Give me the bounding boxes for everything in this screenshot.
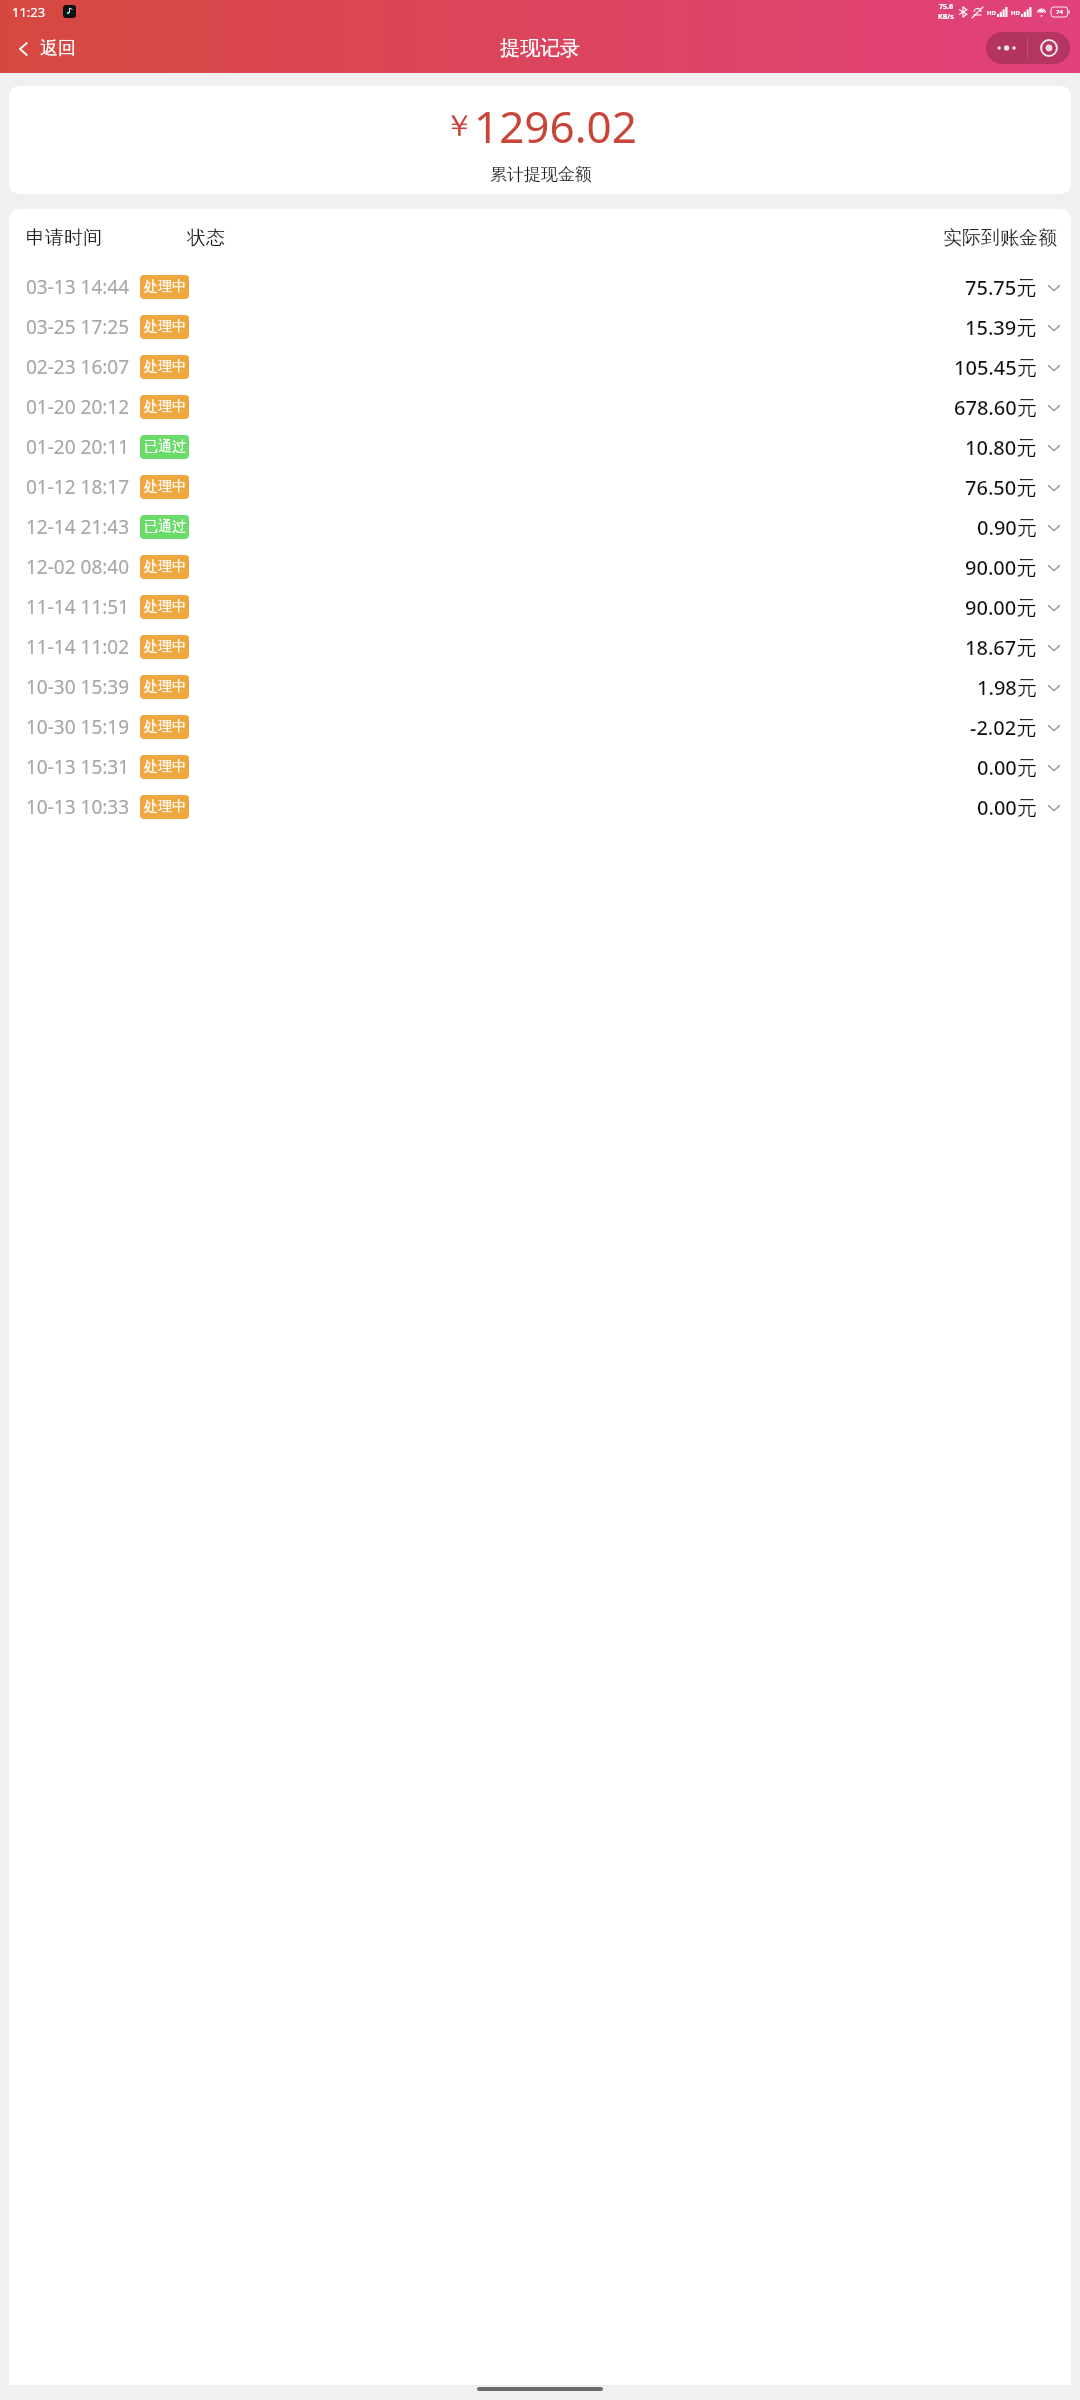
button[interactable]: 10-30 15:39: [9, 667, 1071, 707]
button[interactable]: 03-25 17:25: [9, 307, 1071, 347]
button[interactable]: 02-23 16:07: [9, 347, 1071, 387]
staticText: 15.39元: [965, 314, 1037, 341]
staticText: 处理中: [144, 478, 186, 496]
staticText: 18.67元: [965, 634, 1037, 661]
staticText: 75.6: [939, 2, 953, 12]
staticText: 累计提现金额: [490, 164, 592, 185]
staticText: 11-14 11:02: [26, 634, 130, 660]
staticText: 74: [1056, 8, 1063, 16]
button[interactable]: 01-20 20:11: [9, 427, 1071, 467]
button[interactable]: Close: [1028, 32, 1070, 64]
staticText: 76.50元: [965, 474, 1037, 501]
button[interactable]: 11-14 11:51: [9, 587, 1071, 627]
staticText: 01-20 20:12: [26, 394, 130, 420]
button[interactable]: 03-13 14:44: [9, 267, 1071, 307]
staticText: 75.75元: [965, 274, 1037, 301]
staticText: 12-14 21:43: [26, 514, 130, 540]
staticText: 10-30 15:39: [26, 674, 130, 700]
button[interactable]: 10-30 15:19: [9, 707, 1071, 747]
staticText: 1.98元: [977, 674, 1037, 701]
staticText: 处理中: [144, 318, 186, 336]
staticText: 678.60元: [954, 394, 1037, 421]
staticText: 90.00元: [965, 594, 1037, 621]
staticText: 申请时间: [26, 226, 102, 250]
button[interactable]: 11-14 11:02: [9, 627, 1071, 667]
staticText: 0.90元: [977, 514, 1037, 541]
staticText: 处理中: [144, 358, 186, 376]
staticText: 01-20 20:11: [26, 434, 130, 460]
staticText: 处理中: [144, 798, 186, 816]
staticText: 返回: [40, 37, 76, 60]
staticText: 10-30 15:19: [26, 714, 130, 740]
staticText: 处理中: [144, 638, 186, 656]
button[interactable]: 返回: [8, 31, 82, 66]
staticText: 90.00元: [965, 554, 1037, 581]
staticText: 提现记录: [500, 36, 580, 61]
staticText: 03-25 17:25: [26, 314, 130, 340]
button[interactable]: 10-13 15:31: [9, 747, 1071, 787]
button[interactable]: 12-14 21:43: [9, 507, 1071, 547]
staticText: 已通过: [144, 518, 186, 536]
staticText: 12-02 08:40: [26, 554, 130, 580]
staticText: 状态: [187, 226, 225, 250]
button[interactable]: ￥: [9, 86, 1071, 194]
staticText: 03-13 14:44: [26, 274, 130, 300]
staticText: HD: [987, 9, 996, 17]
staticText: KB/s: [938, 12, 954, 22]
button[interactable]: 10-13 10:33: [9, 787, 1071, 827]
staticText: 1296.02: [474, 96, 637, 156]
staticText: 实际到账金额: [943, 226, 1057, 250]
staticText: 10.80元: [965, 434, 1037, 461]
staticText: 处理中: [144, 718, 186, 736]
staticText: 105.45元: [954, 354, 1037, 381]
button[interactable]: 12-02 08:40: [9, 547, 1071, 587]
staticText: 10-13 10:33: [26, 794, 130, 820]
staticText: 处理中: [144, 598, 186, 616]
staticText: 11:23: [12, 3, 46, 21]
staticText: 处理中: [144, 678, 186, 696]
staticText: 10-13 15:31: [26, 754, 130, 780]
staticText: 0.00元: [977, 794, 1037, 821]
staticText: 11-14 11:51: [26, 594, 130, 620]
staticText: 01-12 18:17: [26, 474, 130, 500]
staticText: 处理中: [144, 398, 186, 416]
staticText: 处理中: [144, 558, 186, 576]
staticText: ￥: [444, 107, 474, 145]
staticText: 处理中: [144, 278, 186, 296]
staticText: 已通过: [144, 438, 186, 456]
staticText: 0.00元: [977, 754, 1037, 781]
staticText: 02-23 16:07: [26, 354, 130, 380]
staticText: HD: [1011, 9, 1020, 17]
button[interactable]: More: [986, 32, 1027, 64]
button[interactable]: 01-20 20:12: [9, 387, 1071, 427]
staticText: 处理中: [144, 758, 186, 776]
staticText: -2.02元: [970, 714, 1037, 741]
button[interactable]: 01-12 18:17: [9, 467, 1071, 507]
